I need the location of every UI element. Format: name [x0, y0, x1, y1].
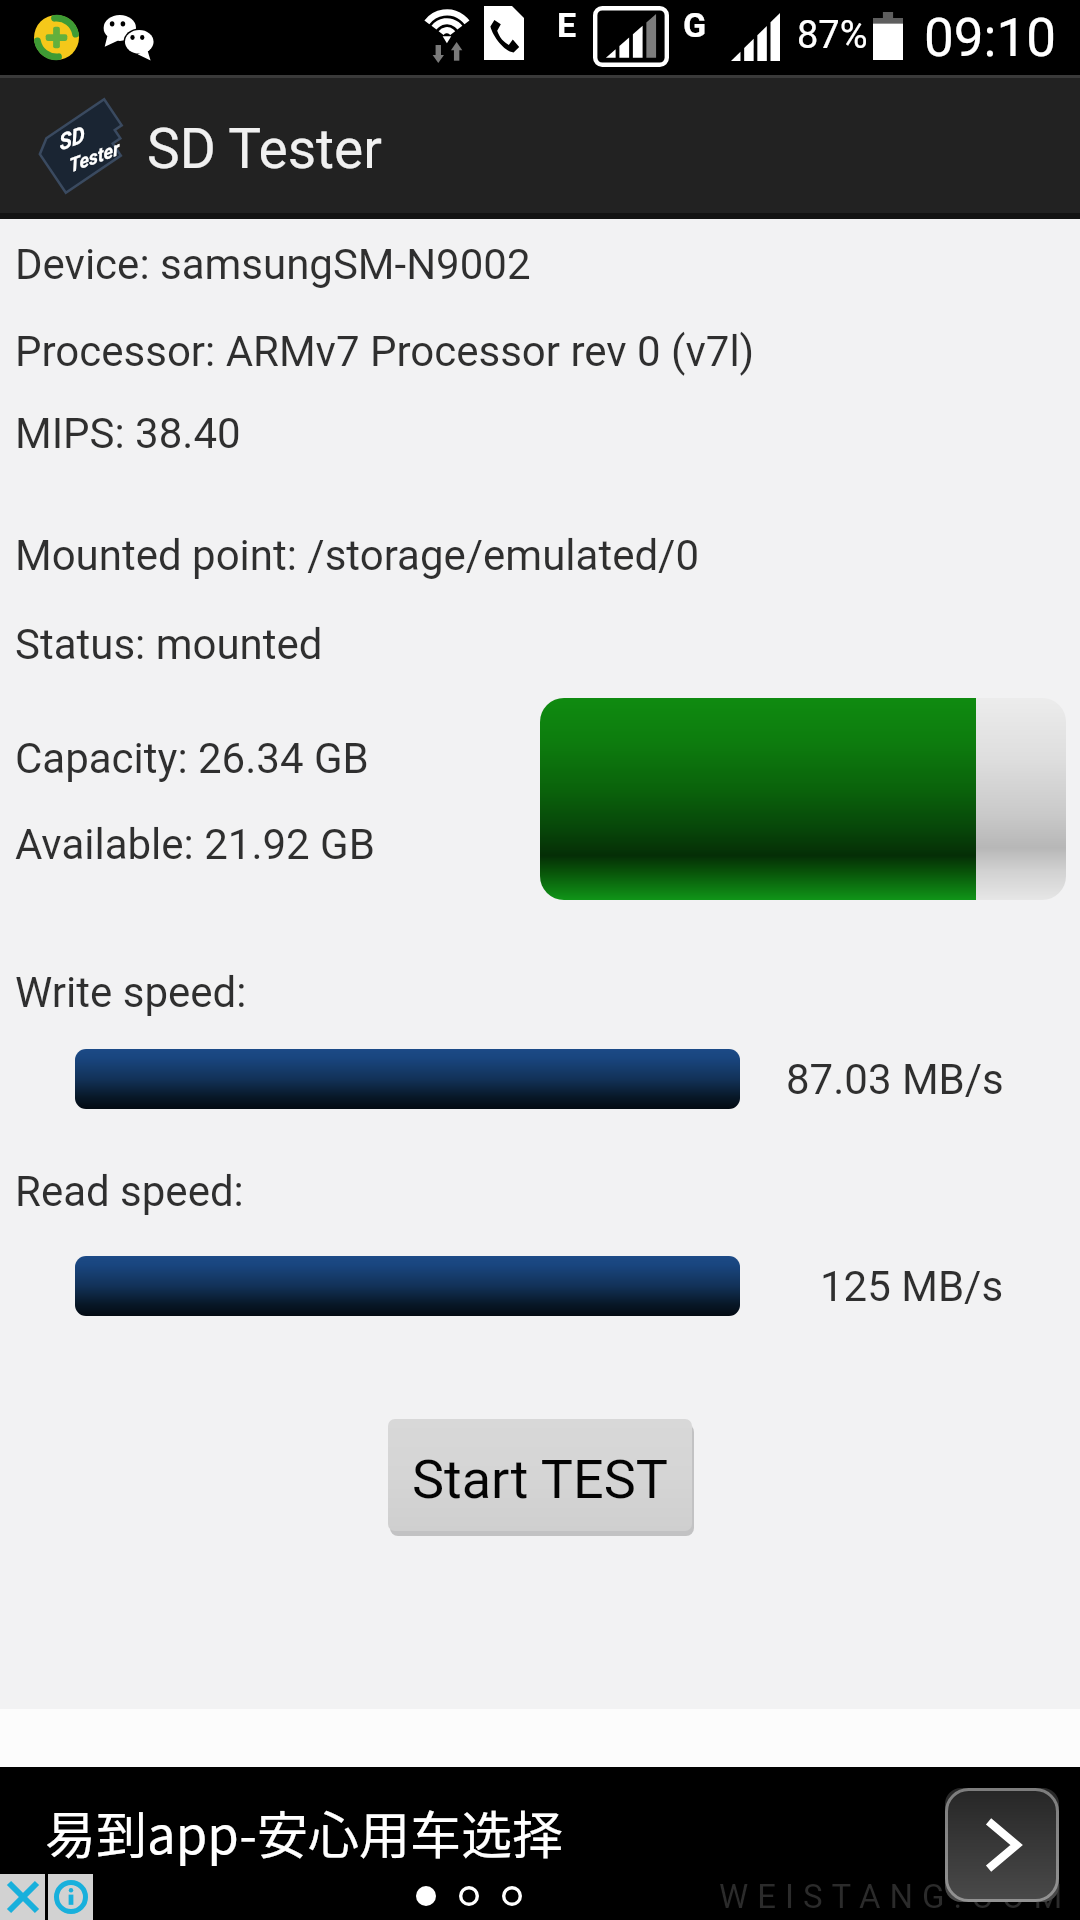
- staticText: SD Tester: [147, 117, 382, 181]
- staticText: MIPS: 38.40: [15, 409, 241, 458]
- staticText: 09:10: [924, 7, 1056, 69]
- staticText: Device: samsungSM-N9002: [15, 240, 531, 289]
- staticText: 易到app-安心用车选择: [45, 1795, 564, 1869]
- staticText: Start TEST: [412, 1448, 668, 1511]
- staticText: Write speed:: [15, 968, 247, 1017]
- staticText: G: [683, 5, 707, 45]
- button[interactable]: Next ad: [945, 1788, 1059, 1902]
- button[interactable]: Start TEST: [388, 1419, 692, 1531]
- staticText: Capacity: 26.34 GB: [15, 734, 369, 783]
- staticText: Status: mounted: [15, 620, 323, 669]
- staticText: Read speed:: [15, 1167, 244, 1216]
- staticText: 87.03 MB/s: [786, 1055, 1004, 1104]
- staticText: Available: 21.92 GB: [15, 820, 375, 869]
- staticText: Processor: ARMv7 Processor rev 0 (v7l): [15, 327, 755, 376]
- staticText: WEISTANG.COM: [719, 1877, 1072, 1916]
- staticText: E: [557, 5, 577, 45]
- button[interactable]: 易到app-安心用车选择: [0, 1767, 1080, 1920]
- button[interactable]: Ad info: [48, 1874, 93, 1920]
- staticText: SD: [53, 123, 88, 156]
- staticText: Tester: [64, 138, 121, 176]
- staticText: 87%: [797, 13, 868, 58]
- staticText: Mounted point: /storage/emulated/0: [15, 531, 700, 580]
- staticText: 125 MB/s: [820, 1262, 1004, 1311]
- button[interactable]: Close ad: [0, 1874, 45, 1920]
